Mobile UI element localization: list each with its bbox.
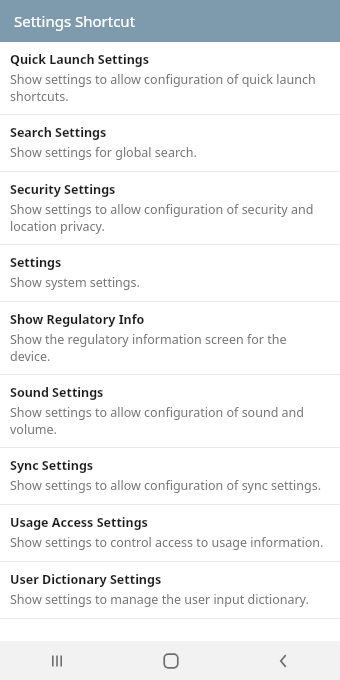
staticText: Show settings to manage the user input d… (10, 591, 309, 608)
button[interactable]: Sync Settings (0, 448, 340, 504)
staticText: Settings Shortcut (14, 11, 136, 31)
staticText: Show settings to allow configuration of … (10, 201, 328, 234)
staticText: Show settings to allow configuration of … (10, 71, 328, 104)
staticText: Show settings to allow configuration of … (10, 477, 322, 494)
staticText: Quick Launch Settings (10, 51, 149, 68)
button[interactable]: User Dictionary Settings (0, 562, 340, 618)
staticText: Show system settings. (10, 274, 140, 291)
staticText: Security Settings (10, 181, 116, 198)
button[interactable]: Quick Launch Settings (0, 42, 340, 114)
button[interactable]: Recent apps (0, 641, 114, 680)
button[interactable]: Sound Settings (0, 375, 340, 447)
staticText: Show the regulatory information screen f… (10, 331, 328, 364)
staticText: Settings (10, 254, 62, 271)
button[interactable]: Home (114, 641, 227, 680)
button[interactable]: Usage Access Settings (0, 505, 340, 561)
staticText: Show settings to allow configuration of … (10, 404, 328, 437)
staticText: Show settings to control access to usage… (10, 534, 324, 551)
staticText: Sound Settings (10, 384, 104, 401)
staticText: Show settings for global search. (10, 144, 197, 161)
staticText: User Dictionary Settings (10, 571, 162, 588)
staticText: Show Regulatory Info (10, 311, 145, 328)
staticText: Sync Settings (10, 457, 94, 474)
button[interactable]: Back (227, 641, 340, 680)
staticText: Search Settings (10, 124, 107, 141)
button[interactable]: Security Settings (0, 172, 340, 244)
staticText: Usage Access Settings (10, 514, 148, 531)
button[interactable]: Settings (0, 245, 340, 301)
button[interactable]: Show Regulatory Info (0, 302, 340, 374)
button[interactable]: Search Settings (0, 115, 340, 171)
